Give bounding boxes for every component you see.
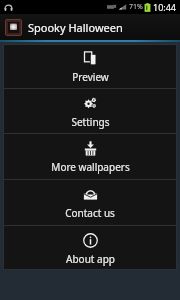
staticText: 71% (129, 2, 143, 12)
button[interactable]: Settings (3, 89, 177, 133)
staticText: Preview (72, 70, 109, 84)
button[interactable]: About app (3, 226, 177, 270)
button[interactable]: Preview (3, 44, 177, 88)
staticText: Contact us (65, 206, 115, 220)
button[interactable]: Contact us (3, 180, 177, 225)
staticText: Settings (71, 115, 110, 129)
staticText: About app (66, 252, 115, 266)
staticText: More wallpapers (51, 160, 130, 174)
staticText: Spooky Halloween (28, 20, 123, 35)
button[interactable]: More wallpapers (3, 134, 177, 179)
staticText: 10:44 (153, 1, 177, 13)
